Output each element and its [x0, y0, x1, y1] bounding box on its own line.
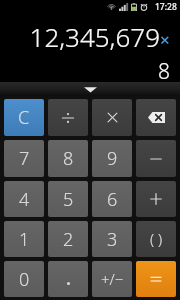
button[interactable]: 9 — [92, 140, 132, 177]
staticText: 7 — [19, 146, 30, 171]
button[interactable]: 8 — [48, 140, 88, 177]
button[interactable] — [136, 261, 176, 297]
staticText: C — [18, 105, 30, 130]
staticText: 0 — [19, 267, 30, 292]
staticText: 2 — [63, 227, 74, 252]
button[interactable]: 2 — [48, 221, 88, 257]
staticText: 9 — [107, 146, 118, 171]
button[interactable]: Show history — [0, 82, 180, 96]
staticText: 1 — [19, 227, 30, 252]
button[interactable]: 0 — [4, 261, 44, 297]
staticText: 6 — [107, 187, 118, 212]
button[interactable]: +/− — [92, 261, 132, 297]
staticText: 5 — [63, 187, 74, 212]
button[interactable]: ( ) — [136, 221, 176, 257]
button[interactable]: 3 — [92, 221, 132, 257]
staticText: 12,345,679 — [29, 19, 160, 54]
button[interactable]: 1 — [4, 221, 44, 257]
staticText: × — [160, 28, 170, 51]
button[interactable]: 4 — [4, 181, 44, 217]
staticText: 8 — [158, 57, 170, 82]
button[interactable] — [92, 99, 132, 136]
button[interactable]: Delete — [136, 99, 176, 136]
staticText: ( ) — [150, 229, 163, 249]
button[interactable] — [48, 261, 88, 297]
staticText: 4 — [19, 187, 30, 212]
button[interactable] — [48, 99, 88, 136]
staticText: 8 — [63, 146, 74, 171]
button[interactable]: 5 — [48, 181, 88, 217]
button[interactable]: C — [4, 99, 44, 136]
staticText: 3 — [107, 227, 118, 252]
button[interactable] — [136, 181, 176, 217]
staticText: 17:28 — [155, 1, 177, 13]
button[interactable]: 6 — [92, 181, 132, 217]
button[interactable]: 7 — [4, 140, 44, 177]
staticText: +/− — [101, 269, 124, 289]
button[interactable] — [136, 140, 176, 177]
